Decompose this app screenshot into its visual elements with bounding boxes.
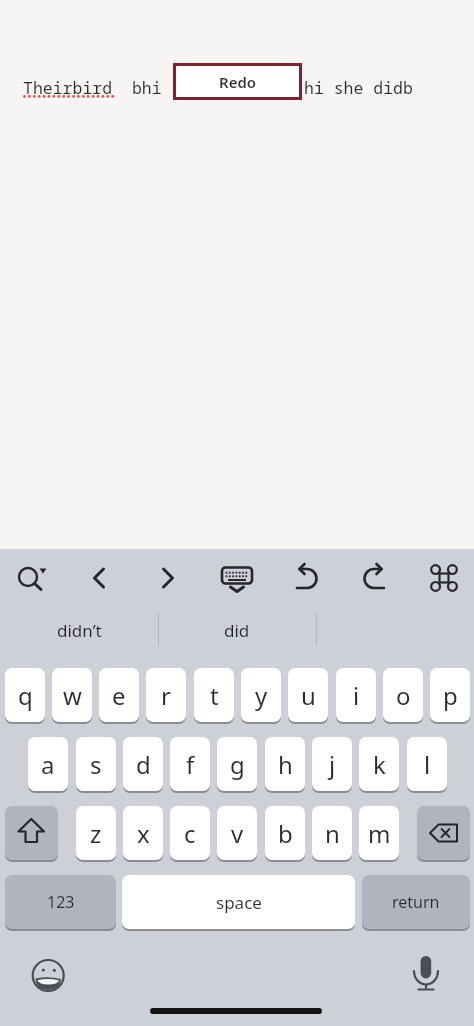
button[interactable]: i (336, 668, 376, 722)
button[interactable] (77, 556, 121, 600)
button[interactable] (417, 806, 470, 860)
staticText: h (278, 748, 293, 781)
button[interactable] (284, 556, 328, 600)
staticText: Redo (219, 72, 257, 92)
staticText: u (301, 679, 316, 712)
button[interactable]: t (194, 668, 234, 722)
staticText: q (18, 679, 33, 712)
button[interactable]: n (312, 806, 352, 860)
button[interactable]: m (359, 806, 399, 860)
staticText: z (90, 817, 102, 850)
staticText: n (325, 817, 340, 850)
button[interactable]: u (288, 668, 328, 722)
staticText: r (161, 679, 171, 712)
staticText: a (41, 748, 55, 781)
button[interactable]: h (265, 737, 305, 791)
staticText: y (255, 679, 268, 712)
button[interactable]: v (217, 806, 257, 860)
staticText: v (231, 817, 244, 850)
staticText: o (396, 679, 411, 712)
button[interactable] (215, 556, 259, 600)
button[interactable]: g (217, 737, 257, 791)
staticText: f (186, 748, 195, 781)
staticText: b (278, 817, 293, 850)
staticText: did (224, 619, 250, 642)
button[interactable]: a (28, 737, 68, 791)
button[interactable]: o (383, 668, 423, 722)
button[interactable]: did (158, 610, 316, 650)
button[interactable] (8, 556, 52, 600)
button[interactable]: f (170, 737, 210, 791)
button[interactable]: d (123, 737, 163, 791)
button[interactable]: w (52, 668, 92, 722)
staticText: x (137, 817, 150, 850)
button[interactable]: q (5, 668, 45, 722)
button[interactable]: p (430, 668, 470, 722)
button[interactable]: return (362, 875, 470, 929)
staticText: c (184, 817, 196, 850)
staticText: return (392, 891, 440, 913)
staticText: p (443, 679, 458, 712)
button[interactable]: r (146, 668, 186, 722)
staticText: w (63, 679, 82, 712)
staticText: j (329, 748, 336, 781)
staticText: didn’t (57, 619, 102, 642)
button[interactable]: s (76, 737, 116, 791)
button[interactable]: j (312, 737, 352, 791)
button[interactable]: c (170, 806, 210, 860)
staticText: Theirbird bhi (23, 76, 162, 98)
button[interactable]: y (241, 668, 281, 722)
button[interactable]: x (123, 806, 163, 860)
button[interactable]: space (122, 875, 355, 929)
button[interactable] (422, 556, 466, 600)
staticText: s (90, 748, 102, 781)
button[interactable]: Redo (173, 63, 302, 100)
staticText: d (136, 748, 151, 781)
button[interactable]: 123 (5, 875, 116, 929)
button[interactable] (5, 806, 58, 860)
staticText: m (368, 817, 391, 850)
button[interactable] (146, 556, 190, 600)
staticText: t (210, 679, 219, 712)
staticText: e (112, 679, 126, 712)
staticText: g (230, 748, 245, 781)
staticText: l (424, 748, 431, 781)
staticText: k (373, 748, 386, 781)
button[interactable]: z (76, 806, 116, 860)
button[interactable]: e (99, 668, 139, 722)
button[interactable]: didn’t (0, 610, 158, 650)
button[interactable] (24, 951, 72, 999)
staticText: hi she didb (304, 76, 413, 98)
button[interactable] (402, 948, 450, 996)
button[interactable] (353, 556, 397, 600)
button[interactable]: l (407, 737, 447, 791)
button[interactable]: k (359, 737, 399, 791)
button[interactable]: b (265, 806, 305, 860)
staticText: i (353, 679, 360, 712)
staticText: 123 (47, 891, 75, 913)
staticText: space (216, 891, 262, 914)
